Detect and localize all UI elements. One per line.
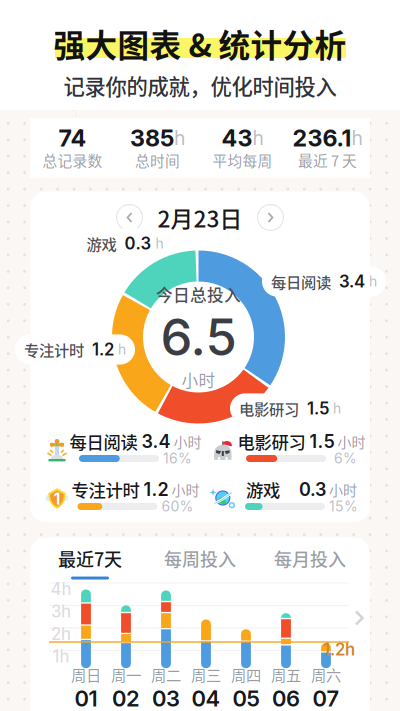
staticText: 平均每周 (212, 149, 272, 171)
staticText: h (329, 400, 341, 417)
staticText: 60% (161, 498, 193, 515)
staticText: 3.4 (331, 271, 365, 292)
staticText: h (351, 126, 362, 150)
staticText: 0.3 (299, 479, 326, 500)
staticText: 1.2 (143, 479, 168, 500)
staticText: 15% (329, 498, 358, 515)
staticText: 最近7天 (58, 545, 122, 572)
staticText: 周五 (271, 663, 301, 685)
staticText: h (174, 126, 185, 150)
staticText: 2h (51, 624, 71, 644)
staticText: 总记录数 (42, 149, 102, 171)
button[interactable]: 每周投入 (145, 545, 255, 579)
staticText: 周四 (231, 663, 261, 685)
staticText: 02 (112, 685, 140, 711)
staticText: 周一 (111, 663, 141, 685)
staticText: 今日总投入 (156, 282, 241, 306)
staticText: 周三 (191, 663, 221, 685)
staticText: 游戏 (246, 477, 280, 502)
staticText: 06 (272, 685, 300, 711)
staticText: 385 (130, 124, 174, 152)
staticText: 电影研习 (237, 429, 305, 454)
staticText: 74 (58, 124, 86, 152)
staticText: 每月投入 (274, 545, 346, 572)
staticText: 每周投入 (164, 545, 236, 572)
staticText: 0.3 (116, 233, 151, 254)
staticText: 小时 (168, 479, 199, 500)
button[interactable]: Previous day (116, 204, 142, 230)
staticText: 游戏 (86, 232, 116, 255)
staticText: 1.5 (309, 431, 334, 452)
staticText: 每日阅读 (69, 429, 137, 454)
staticText: 每日阅读 (271, 270, 331, 293)
staticText: 3.4 (141, 431, 170, 452)
staticText: 1h (52, 646, 69, 666)
staticText: 3h (51, 601, 71, 621)
staticText: 2月23日 (157, 201, 242, 234)
staticText: 1.2 (84, 339, 114, 360)
staticText: 周六 (311, 663, 341, 685)
staticText: 1.2h (323, 639, 355, 660)
staticText: 6.5 (160, 306, 236, 368)
staticText: 周二 (151, 663, 181, 685)
staticText: h (252, 126, 263, 150)
staticText: 07 (312, 685, 339, 711)
staticText: h (114, 341, 126, 358)
staticText: 01 (74, 685, 97, 711)
staticText: 周日 (71, 663, 101, 685)
staticText: 总时间 (135, 149, 180, 171)
staticText: 236.1 (292, 124, 351, 152)
staticText: 专注计时 (71, 477, 139, 502)
staticText: 小时 (334, 431, 365, 452)
staticText: 16% (163, 450, 192, 467)
staticText: 4h (50, 579, 71, 599)
button[interactable]: 每月投入 (255, 545, 365, 579)
staticText: 小时 (181, 368, 215, 392)
staticText: 1.5 (299, 398, 329, 419)
button[interactable]: 最近7天 (35, 545, 145, 579)
staticText: h (151, 235, 163, 252)
staticText: 最近 7 天 (298, 149, 357, 171)
staticText: h (365, 273, 377, 290)
staticText: 03 (152, 685, 180, 711)
button[interactable]: Next day (257, 204, 283, 230)
staticText: 小时 (326, 479, 357, 500)
staticText: 43 (221, 124, 252, 152)
staticText: 6% (334, 450, 357, 467)
staticText: 强大图表 & 统计分析 (53, 21, 346, 66)
staticText: 小时 (170, 431, 201, 452)
staticText: 记录你的成就，优化时间投入 (63, 70, 336, 101)
staticText: 05 (232, 685, 259, 711)
staticText: 1 (53, 489, 60, 508)
staticText: 04 (191, 685, 220, 711)
staticText: 专注计时 (24, 338, 84, 361)
staticText: 电影研习 (239, 397, 299, 420)
